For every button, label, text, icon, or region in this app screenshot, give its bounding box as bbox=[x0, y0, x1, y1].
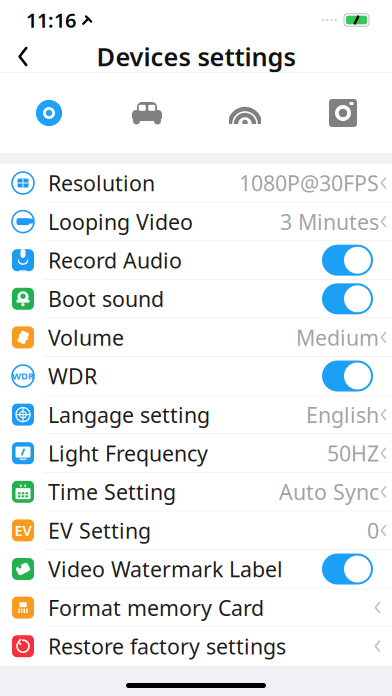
button[interactable]: Time Setting bbox=[0, 473, 392, 511]
button[interactable]: Car bbox=[98, 73, 196, 153]
button[interactable]: Resolution bbox=[0, 164, 392, 203]
button[interactable]: EV bbox=[0, 511, 392, 550]
staticText: 1080P@30FPS bbox=[239, 169, 379, 197]
staticText: Auto Sync bbox=[279, 478, 379, 506]
staticText: English bbox=[306, 400, 379, 429]
staticText: Boot sound bbox=[48, 285, 164, 313]
button[interactable]: Restore factory settings bbox=[0, 627, 392, 666]
staticText: 0 bbox=[367, 516, 379, 544]
staticText: WDR bbox=[48, 362, 97, 390]
button[interactable]: Back bbox=[8, 39, 38, 73]
staticText: Volume bbox=[48, 323, 124, 351]
staticText: EV Setting bbox=[48, 516, 151, 544]
staticText: WDR bbox=[12, 370, 34, 382]
button[interactable]: Wi-Fi bbox=[196, 73, 294, 153]
button[interactable]: Boot sound bbox=[0, 280, 392, 318]
staticText: Video Watermark Label bbox=[48, 555, 283, 583]
staticText: Devices settings bbox=[96, 40, 295, 73]
staticText: EV bbox=[14, 521, 31, 540]
staticText: 11:16 bbox=[26, 7, 76, 33]
button[interactable]: Camera bbox=[294, 73, 392, 153]
button[interactable]: Video Watermark Label bbox=[0, 550, 392, 589]
staticText: Medium bbox=[296, 323, 379, 351]
button[interactable]: Volume bbox=[0, 318, 392, 357]
staticText: Langage setting bbox=[48, 400, 210, 429]
staticText: Time Setting bbox=[48, 478, 176, 506]
staticText: Format memory Card bbox=[48, 593, 264, 622]
button[interactable]: Light Frequency bbox=[0, 434, 392, 473]
button[interactable]: Settings bbox=[0, 73, 98, 153]
staticText: 50HZ bbox=[327, 439, 379, 467]
button[interactable]: Langage setting bbox=[0, 396, 392, 434]
staticText: Looping Video bbox=[48, 207, 193, 236]
button[interactable]: Looping Video bbox=[0, 203, 392, 241]
staticText: 3 Minutes bbox=[280, 207, 379, 236]
button[interactable]: Record Audio bbox=[0, 241, 392, 280]
button[interactable]: Format memory Card bbox=[0, 589, 392, 627]
button[interactable]: WDR bbox=[0, 357, 392, 396]
staticText: Restore factory settings bbox=[48, 632, 286, 660]
staticText: Resolution bbox=[48, 169, 155, 197]
staticText: Light Frequency bbox=[48, 439, 208, 467]
staticText: Record Audio bbox=[48, 246, 182, 274]
